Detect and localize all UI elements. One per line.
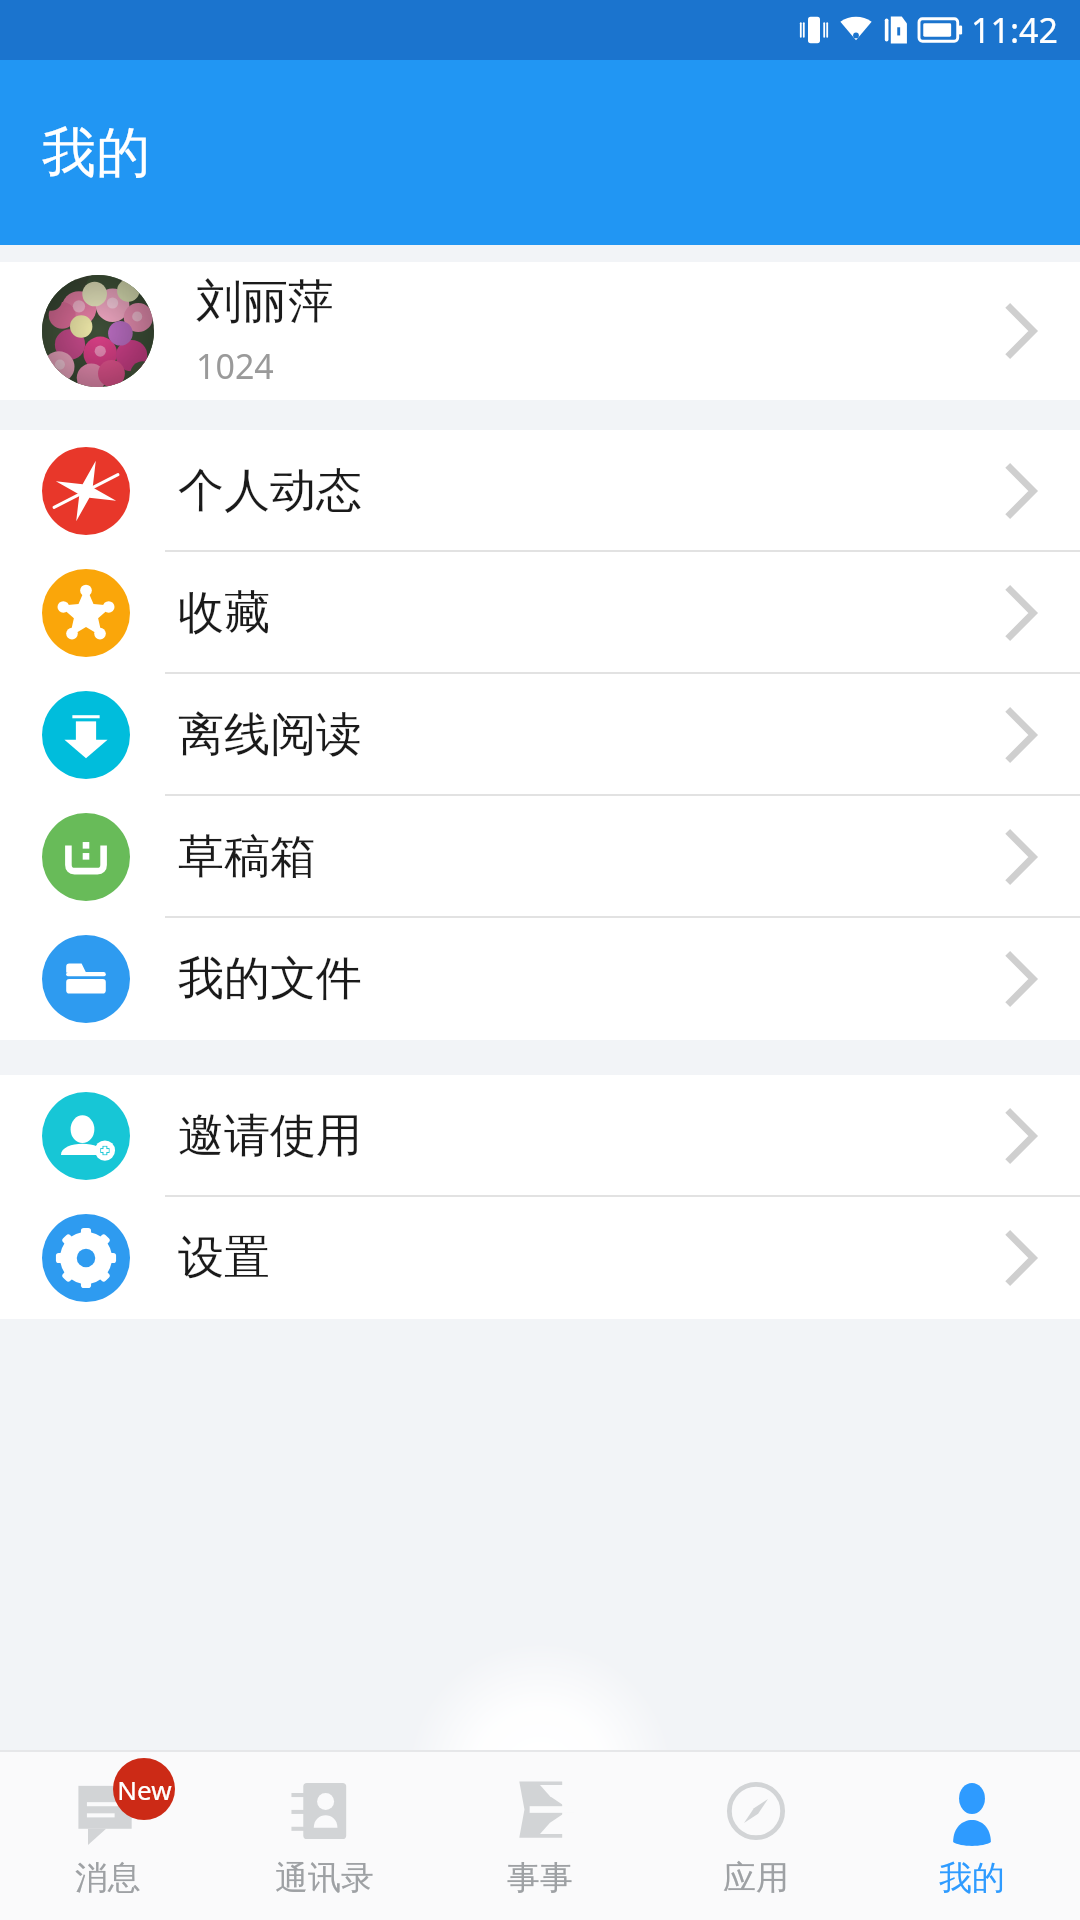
staticText: 事事 [507,1857,573,1899]
staticText: New [117,1772,172,1807]
staticText: 消息 [75,1857,141,1899]
button[interactable]: 收藏 [0,552,1080,674]
button[interactable]: 刘丽萍 [0,262,1080,400]
button[interactable]: 个人动态 [0,430,1080,552]
staticText: 通讯录 [275,1857,374,1899]
button[interactable]: 应用 [648,1750,864,1920]
button[interactable]: 邀请使用 [0,1075,1080,1197]
staticText: 收藏 [178,584,1004,642]
button[interactable]: 草稿箱 [0,796,1080,918]
staticText: 应用 [723,1857,789,1899]
button[interactable]: New [0,1750,216,1920]
staticText: 我的文件 [178,950,1004,1008]
staticText: 我的 [939,1857,1005,1899]
button[interactable]: 事事 [432,1750,648,1920]
staticText: 1024 [196,343,274,389]
staticText: 刘丽萍 [196,273,334,331]
staticText: 个人动态 [178,462,1004,520]
button[interactable]: 离线阅读 [0,674,1080,796]
button[interactable]: 设置 [0,1197,1080,1319]
staticText: 11:42 [971,7,1058,53]
staticText: 我的 [42,119,150,187]
button[interactable]: 通讯录 [216,1750,432,1920]
button[interactable]: 我的文件 [0,918,1080,1040]
staticText: 设置 [178,1229,1004,1287]
staticText: 邀请使用 [178,1107,1004,1165]
button[interactable]: 我的 [864,1750,1080,1920]
staticText: 草稿箱 [178,828,1004,886]
staticText: 离线阅读 [178,706,1004,764]
